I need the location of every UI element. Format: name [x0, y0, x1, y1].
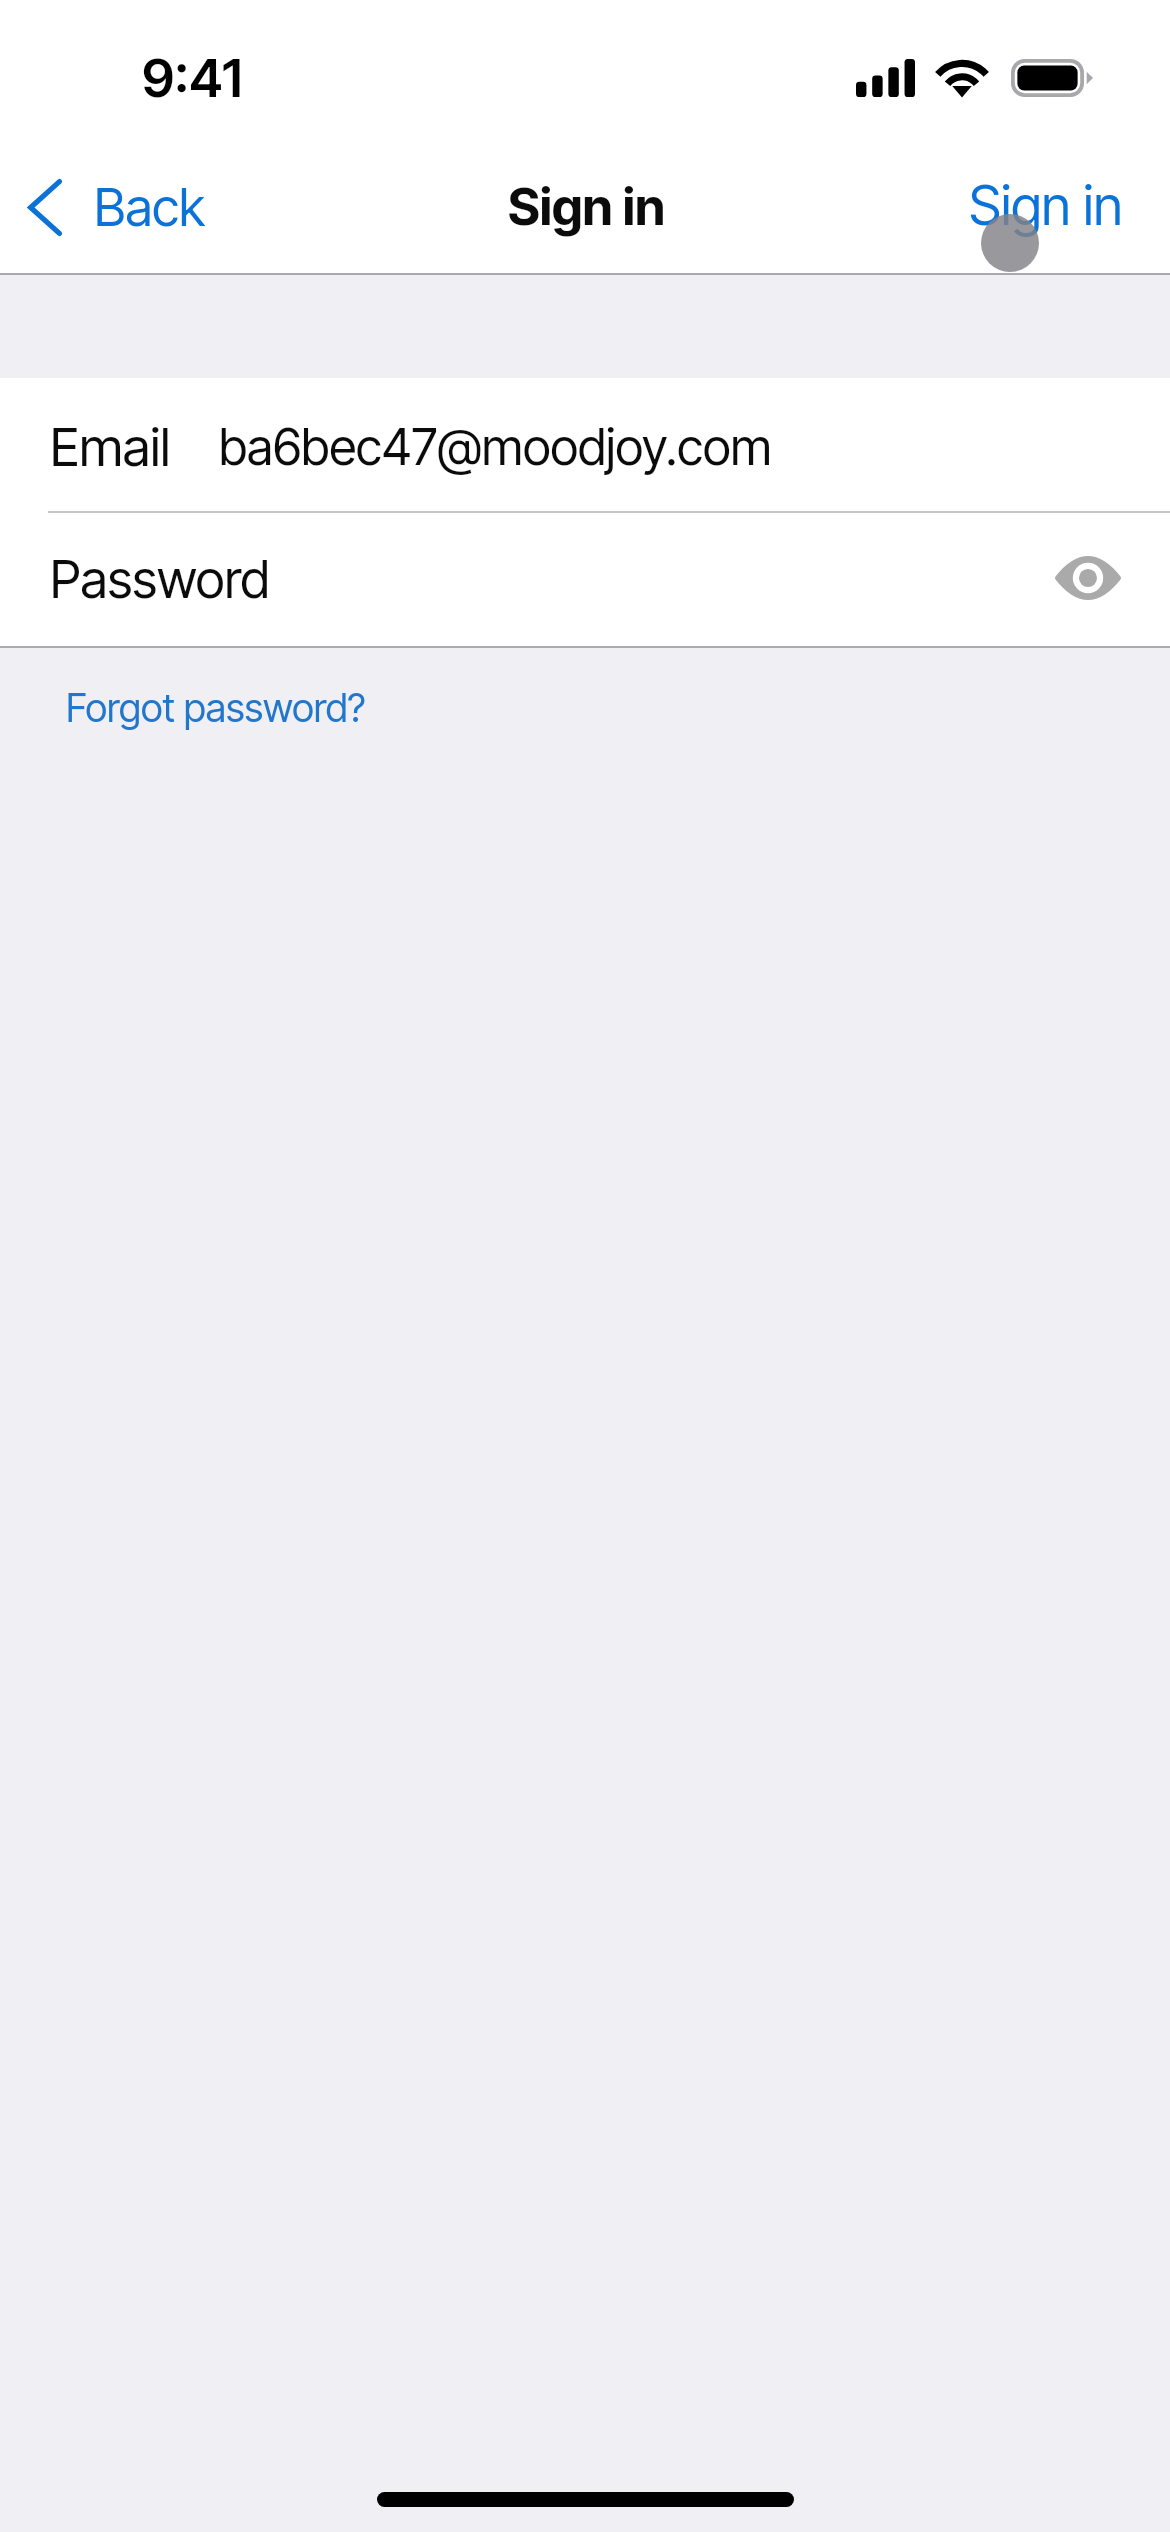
staticText: Back — [94, 176, 205, 239]
button[interactable]: Show password — [1050, 540, 1126, 616]
staticText: Sign in — [508, 176, 666, 238]
staticText: Email — [50, 415, 171, 479]
staticText: Password — [50, 548, 270, 611]
button[interactable]: Email — [0, 378, 1170, 511]
staticText: ba6bec47@moodjoy.com — [219, 417, 772, 477]
button[interactable]: Sign in — [921, 159, 1170, 252]
button[interactable]: Back — [0, 164, 223, 251]
button[interactable]: Forgot password? — [0, 648, 1170, 778]
staticText: 9:41 — [142, 46, 243, 110]
staticText: Sign in — [969, 173, 1123, 238]
staticText: Forgot password? — [66, 684, 366, 731]
button[interactable]: Password — [0, 513, 1170, 646]
